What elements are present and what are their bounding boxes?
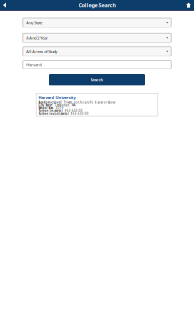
staticText: Academic Level:: [38, 101, 62, 104]
staticText: Tuition (in-state):: [38, 109, 63, 112]
button[interactable]: Back: [0, 0, 10, 10]
staticText: School Size:: [38, 106, 54, 110]
staticText: Harvard University: [38, 95, 75, 100]
staticText: City, State:: [38, 103, 53, 107]
button[interactable]: 4 And 2 Year: [23, 33, 171, 43]
staticText: Cambridge, MA: [55, 103, 76, 107]
staticText: 5079: [56, 106, 64, 110]
staticText: $63,630.00: [71, 112, 89, 115]
button[interactable]: Home: [182, 0, 194, 10]
staticText: Search: [90, 77, 103, 82]
button[interactable]: All Areas of Study: [23, 47, 171, 56]
staticText: Private not-for-profit, 4-year or above: [64, 101, 116, 104]
staticText: 4 And 2 Year: [26, 35, 48, 40]
staticText: $63,630.00: [65, 109, 83, 112]
staticText: Any State: [26, 20, 42, 25]
staticText: Harvard: [26, 62, 41, 67]
button[interactable]: Any State: [23, 18, 171, 27]
staticText: All Areas of Study: [26, 49, 57, 54]
staticText: Tuition (out-of-state):: [38, 112, 69, 115]
staticText: College Search: [78, 2, 115, 9]
button[interactable]: Search: [49, 74, 145, 86]
